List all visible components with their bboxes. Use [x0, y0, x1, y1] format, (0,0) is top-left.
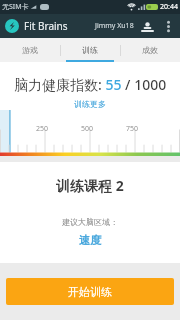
staticText: 训练	[82, 45, 98, 55]
staticText: 250	[36, 124, 49, 134]
staticText: 速度	[79, 233, 101, 247]
button[interactable]: More options	[161, 19, 175, 33]
button[interactable]: 训练	[60, 38, 120, 62]
staticText: 无SIM卡	[2, 2, 29, 12]
staticText: 成效	[142, 45, 158, 55]
staticText: 训练更多	[74, 99, 106, 109]
staticText: 训练课程 2	[56, 176, 124, 195]
button[interactable]: Profile	[139, 18, 156, 35]
button[interactable]: Fit Brains home	[5, 19, 19, 33]
staticText: 游戏	[22, 45, 38, 55]
staticText: 建议大脑区域：	[62, 217, 118, 227]
button[interactable]: 开始训练	[6, 278, 174, 305]
staticText: 500	[81, 124, 94, 134]
staticText: 750	[126, 124, 139, 134]
button[interactable]: 游戏	[0, 38, 60, 62]
staticText: 开始训练	[68, 285, 112, 299]
staticText: Jimmy Xu18	[95, 21, 134, 31]
staticText: 20:44	[160, 2, 178, 12]
staticText: Fit Brains	[24, 19, 68, 33]
button[interactable]: 训练更多	[68, 98, 112, 110]
staticText: 脑力健康指数: 55 / 1000	[14, 75, 167, 94]
button[interactable]: 成效	[120, 38, 180, 62]
